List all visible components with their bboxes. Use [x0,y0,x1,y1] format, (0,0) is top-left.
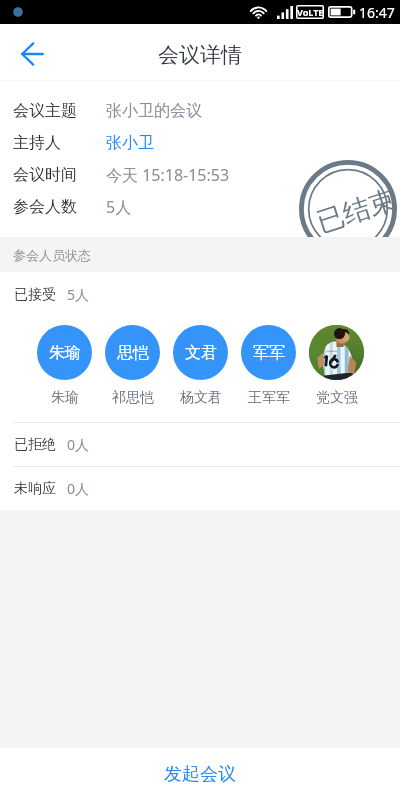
button[interactable]: 已拒绝 [0,423,400,466]
staticText: 党文强 [316,389,358,407]
staticText: VoLTE [297,6,324,18]
staticText: 0人 [67,479,90,498]
staticText: 会议详情 [158,42,242,68]
button[interactable]: Back [4,26,60,82]
staticText: 5人 [106,196,132,218]
button[interactable]: 文君 [173,325,228,407]
staticText: 文君 [185,343,217,363]
staticText: 张小卫 [106,133,154,153]
button[interactable]: 朱瑜 [37,325,92,407]
staticText: 今天 15:18-15:53 [106,164,230,186]
staticText: 已结束 [313,182,400,237]
staticText: 主持人 [13,133,61,153]
staticText: 会议主题 [13,101,77,121]
staticText: 16:47 [359,3,395,22]
button[interactable]: 党文强 [309,325,364,407]
button[interactable]: 军军 [241,325,296,407]
staticText: 参会人员状态 [13,247,91,263]
staticText: 张小卫的会议 [106,101,202,121]
staticText: 思恺 [117,343,149,363]
staticText: 5人 [67,285,90,304]
staticText: 朱瑜 [49,343,81,363]
staticText: 已拒绝 [14,436,56,454]
staticText: 杨文君 [180,389,222,407]
staticText: 朱瑜 [51,389,79,407]
staticText: 王军军 [248,389,290,407]
staticText: 0人 [67,435,90,454]
button[interactable]: 发起会议 [0,748,400,800]
staticText: 未响应 [14,480,56,498]
button[interactable]: 思恺 [105,325,160,407]
staticText: 发起会议 [164,763,236,786]
staticText: 参会人数 [13,197,77,217]
button[interactable]: 未响应 [0,467,400,510]
staticText: 军军 [253,343,285,363]
staticText: 已接受 [14,286,56,304]
staticText: 会议时间 [13,165,77,185]
staticText: 祁思恺 [112,389,154,407]
